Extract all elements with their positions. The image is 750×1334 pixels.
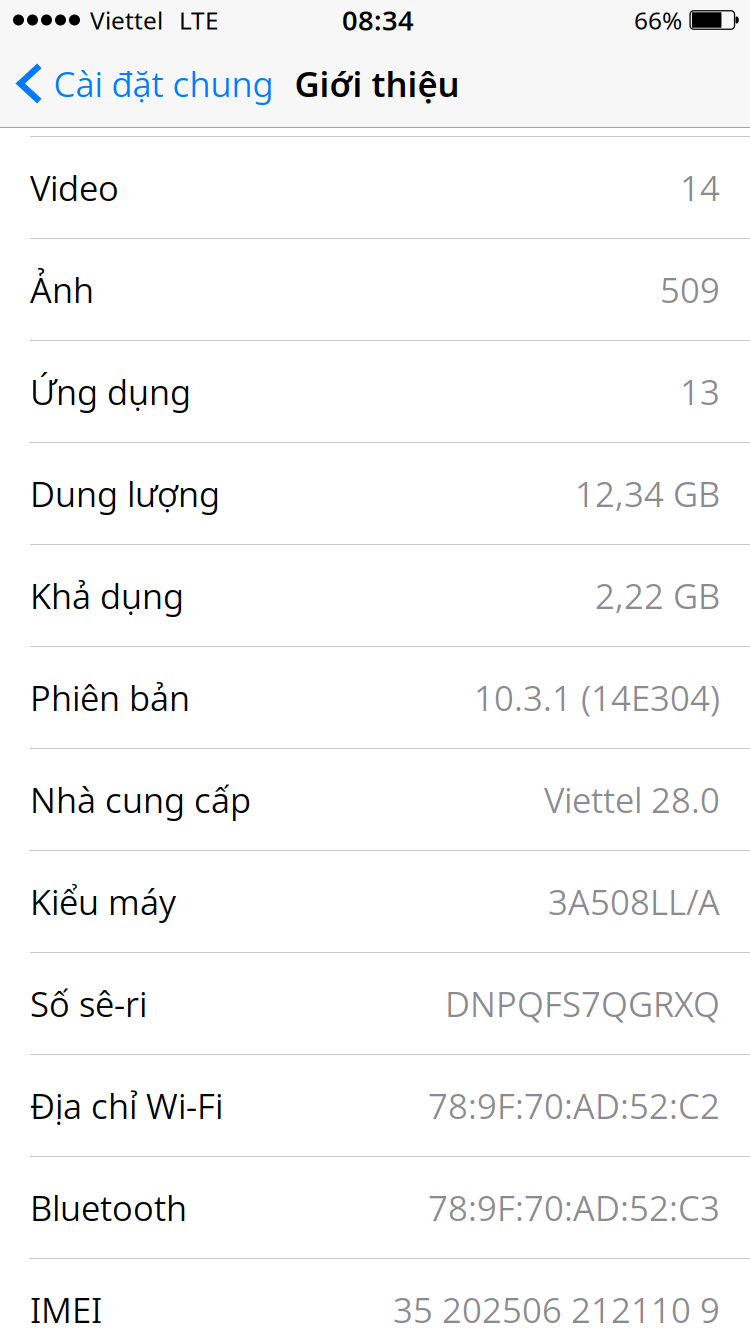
staticText: Viettel: [90, 3, 163, 37]
button[interactable]: Số sê-ri: [0, 953, 750, 1055]
staticText: Viettel 28.0: [544, 776, 720, 823]
staticText: 509: [660, 266, 720, 313]
button[interactable]: Kiểu máy: [0, 851, 750, 953]
button[interactable]: Phiên bản: [0, 647, 750, 749]
button[interactable]: Ảnh: [0, 239, 750, 341]
staticText: 14: [680, 164, 720, 211]
button[interactable]: Bluetooth: [0, 1157, 750, 1259]
staticText: 13: [680, 368, 720, 415]
staticText: Địa chỉ Wi-Fi: [30, 1082, 223, 1129]
button[interactable]: IMEI: [0, 1259, 750, 1334]
staticText: Số sê-ri: [30, 980, 147, 1027]
staticText: 12,34 GB: [575, 470, 720, 517]
staticText: Bluetooth: [30, 1184, 187, 1231]
button[interactable]: Dung lượng: [0, 443, 750, 545]
staticText: DNPQFS7QGRXQ: [445, 980, 720, 1027]
staticText: 78:9F:70:AD:52:C2: [428, 1082, 720, 1129]
staticText: IMEI: [30, 1286, 102, 1333]
staticText: Ảnh: [30, 266, 94, 313]
button[interactable]: Cài đặt chung: [0, 40, 287, 127]
staticText: 3A508LL/A: [548, 878, 720, 925]
staticText: 2,22 GB: [595, 572, 720, 619]
staticText: LTE: [179, 3, 219, 37]
staticText: 35 202506 212110 9: [393, 1286, 720, 1333]
button[interactable]: Nhà cung cấp: [0, 749, 750, 851]
staticText: Khả dụng: [30, 572, 184, 619]
staticText: Phiên bản: [30, 674, 190, 721]
button[interactable]: Khả dụng: [0, 545, 750, 647]
staticText: Nhà cung cấp: [30, 776, 251, 823]
staticText: Kiểu máy: [30, 878, 176, 925]
staticText: Dung lượng: [30, 470, 220, 517]
staticText: 78:9F:70:AD:52:C3: [428, 1184, 720, 1231]
staticText: Ứng dụng: [30, 368, 191, 415]
button[interactable]: Địa chỉ Wi-Fi: [0, 1055, 750, 1157]
staticText: 08:34: [342, 1, 414, 39]
staticText: Cài đặt chung: [53, 60, 273, 107]
staticText: Giới thiệu: [294, 60, 459, 107]
staticText: 66%: [634, 3, 682, 37]
button[interactable]: Ứng dụng: [0, 341, 750, 443]
staticText: Video: [30, 164, 119, 211]
button[interactable]: Video: [0, 137, 750, 239]
staticText: 10.3.1 (14E304): [474, 674, 720, 721]
